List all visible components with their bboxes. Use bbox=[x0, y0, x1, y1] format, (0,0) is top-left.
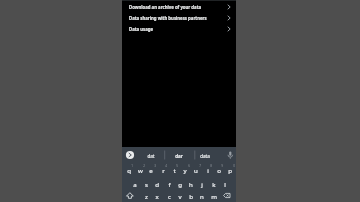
staticText: o bbox=[217, 166, 221, 174]
staticText: t bbox=[173, 166, 176, 174]
staticText: d bbox=[155, 180, 159, 188]
staticText: h bbox=[189, 180, 193, 188]
staticText: 2 bbox=[143, 164, 145, 168]
staticText: 0 bbox=[233, 164, 235, 168]
staticText: e bbox=[149, 166, 153, 174]
staticText: 7 bbox=[199, 164, 201, 168]
staticText: z bbox=[145, 192, 148, 200]
staticText: b bbox=[189, 192, 193, 200]
staticText: w bbox=[138, 166, 143, 174]
staticText: c bbox=[168, 192, 171, 200]
staticText: f bbox=[168, 180, 171, 188]
staticText: x bbox=[155, 192, 159, 200]
staticText: n bbox=[200, 192, 204, 200]
staticText: 5 bbox=[176, 164, 178, 168]
staticText: a bbox=[133, 180, 137, 188]
staticText: i bbox=[207, 166, 209, 174]
staticText: s bbox=[145, 180, 148, 188]
staticText: Data usage bbox=[129, 26, 154, 32]
staticText: dat bbox=[147, 153, 155, 159]
staticText: data bbox=[200, 153, 210, 159]
staticText: dar bbox=[175, 153, 183, 159]
staticText: p bbox=[228, 166, 232, 174]
staticText: k bbox=[212, 180, 216, 188]
staticText: 4 bbox=[165, 164, 167, 168]
staticText: y bbox=[183, 166, 187, 174]
staticText: 3 bbox=[154, 164, 156, 168]
staticText: q bbox=[127, 166, 131, 174]
staticText: g bbox=[178, 180, 182, 188]
staticText: Data sharing with business partners bbox=[129, 15, 207, 21]
staticText: l bbox=[224, 180, 226, 188]
staticText: m bbox=[211, 192, 217, 200]
staticText: v bbox=[178, 192, 182, 200]
staticText: 6 bbox=[188, 164, 190, 168]
staticText: 8 bbox=[210, 164, 212, 168]
staticText: r bbox=[162, 166, 165, 174]
staticText: j bbox=[201, 180, 203, 188]
staticText: 9 bbox=[221, 164, 223, 168]
staticText: Download an archive of your data bbox=[129, 4, 202, 10]
staticText: u bbox=[194, 166, 198, 174]
staticText: 1 bbox=[131, 164, 133, 168]
